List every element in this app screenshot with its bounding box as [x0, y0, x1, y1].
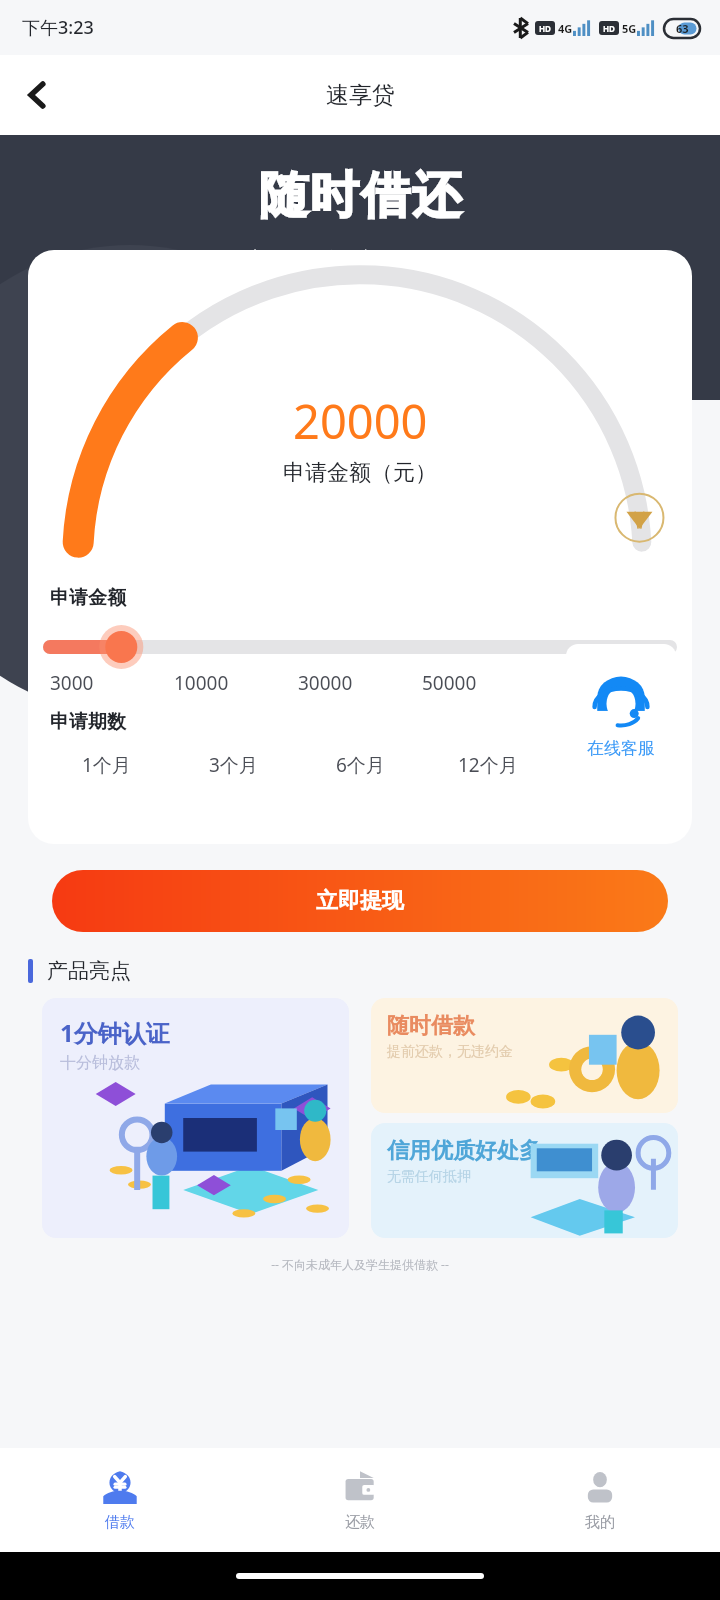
staticText: -- 不向未成年人及学生提供借款 -- [0, 1256, 720, 1272]
staticText: 下午3:23 [22, 15, 94, 40]
staticText: 在线客服 [587, 738, 655, 759]
staticText: 1个月 [82, 752, 131, 778]
staticText: HD [603, 23, 615, 34]
staticText: 无需任何抵押 [387, 1168, 471, 1186]
staticText: 3000 [50, 670, 94, 696]
button[interactable]: 1个月 [42, 752, 170, 778]
button[interactable]: 12个月 [424, 752, 551, 778]
button[interactable]: 信用优质好处多 [371, 1123, 678, 1238]
button[interactable]: 在线客服 [566, 644, 676, 784]
staticText: 5G [622, 21, 637, 36]
staticText: 随时借款 [387, 1012, 475, 1040]
staticText: 产品亮点 [47, 958, 131, 984]
staticText: 提前还款，无违约金 [387, 1043, 513, 1061]
button[interactable]: 24个月 [551, 752, 678, 778]
button[interactable]: 还款 [240, 1448, 480, 1552]
button[interactable]: 1分钟认证 [42, 998, 349, 1238]
staticText: 10000 [174, 670, 229, 696]
staticText: 我的 [585, 1513, 615, 1532]
staticText: 申请金额（元） [283, 459, 437, 487]
staticText: 20000 [293, 389, 428, 453]
staticText: 申请期数 [50, 710, 126, 734]
staticText: 12个月 [458, 752, 518, 778]
staticText: 6个月 [336, 752, 385, 778]
staticText: 十分钟放款 [60, 1053, 140, 1073]
staticText: 速享贷 [326, 81, 395, 110]
button[interactable]: 我的 [480, 1448, 720, 1552]
staticText: 24个月 [585, 752, 645, 778]
staticText: 随时借还 [258, 165, 462, 227]
button[interactable]: 借款 [0, 1448, 240, 1552]
button[interactable]: 随时借款 [371, 998, 678, 1113]
staticText: 50000 [422, 670, 477, 696]
staticText: 立即提现 [316, 887, 404, 915]
button[interactable]: 返回 [10, 67, 66, 123]
staticText: 申请金额 [50, 586, 126, 610]
staticText: 高效 简单 安全 [245, 245, 403, 276]
staticText: 还款 [345, 1513, 375, 1532]
button[interactable]: 6个月 [297, 752, 424, 778]
staticText: 30000 [298, 670, 353, 696]
staticText: 3个月 [209, 752, 258, 778]
staticText: 4G [558, 21, 573, 36]
staticText: 1分钟认证 [60, 1016, 170, 1049]
staticText: HD [539, 23, 551, 34]
staticText: 信用优质好处多 [387, 1137, 541, 1165]
button[interactable]: 立即提现 [52, 870, 668, 932]
button[interactable]: 3个月 [170, 752, 297, 778]
staticText: 63 [676, 21, 689, 36]
staticText: 借款 [105, 1513, 135, 1532]
